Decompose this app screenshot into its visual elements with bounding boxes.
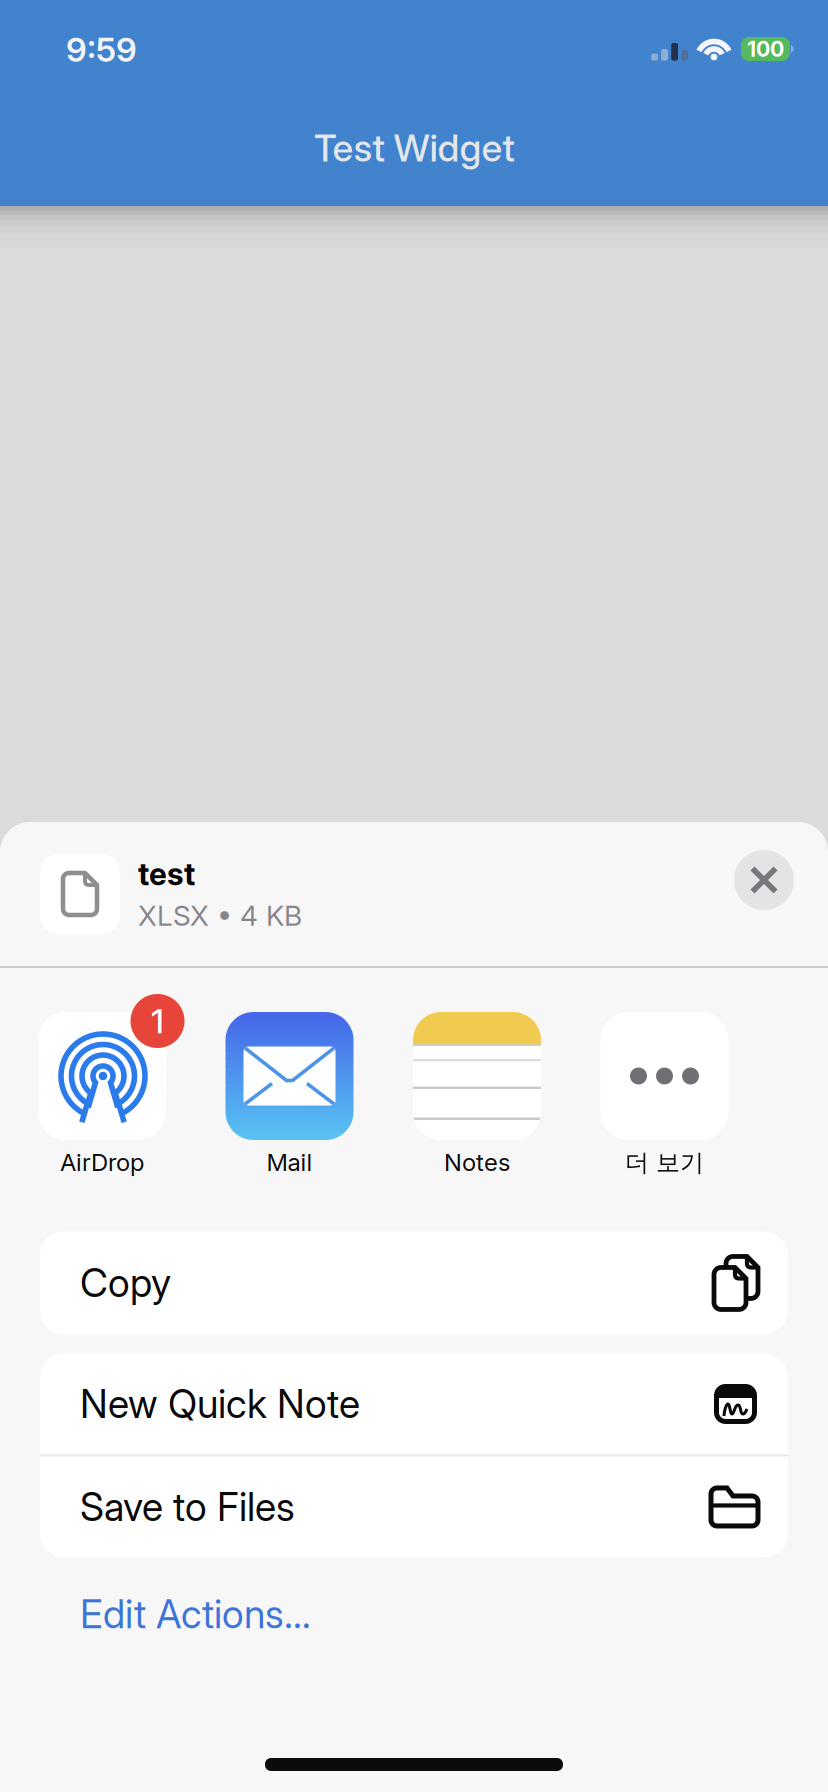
button[interactable]: New Quick Note [40,1353,788,1454]
button[interactable]: Save to Files [40,1456,788,1557]
button[interactable]: AirDrop [38,1012,166,1176]
staticText: 1 [151,1001,164,1041]
staticText: 9:59 [66,30,137,69]
button[interactable]: Mail [225,1012,353,1176]
staticText: 100 [747,36,784,62]
staticText: Mail [266,1148,312,1176]
staticText: 더 보기 [625,1148,704,1177]
button[interactable]: Notes [413,1012,541,1176]
staticText: test [138,856,195,892]
staticText: AirDrop [60,1148,144,1176]
staticText: Notes [444,1148,510,1176]
button[interactable]: Edit Actions… [80,1591,311,1637]
button[interactable]: Copy [40,1231,788,1334]
staticText: Edit Actions… [80,1591,311,1637]
button[interactable]: Close [734,850,794,910]
staticText: Copy [80,1260,171,1306]
staticText: XLSX • 4 KB [138,899,302,932]
staticText: New Quick Note [80,1381,360,1427]
button[interactable]: 더 보기 [600,1012,728,1177]
staticText: Save to Files [80,1484,295,1530]
staticText: Test Widget [313,126,514,170]
